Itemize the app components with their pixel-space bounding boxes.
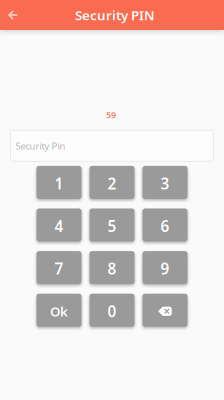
button[interactable]: 1 xyxy=(36,166,81,199)
button[interactable]: Back xyxy=(0,0,26,30)
staticText: 4 xyxy=(54,216,63,236)
staticText: 2 xyxy=(107,173,116,194)
staticText: 0 xyxy=(107,301,116,322)
staticText: Ok xyxy=(50,302,68,320)
button[interactable]: 9 xyxy=(142,251,187,284)
staticText: 5 xyxy=(107,216,116,236)
staticText: 9 xyxy=(160,258,169,279)
staticText: 7 xyxy=(54,258,63,279)
staticText: Security Pin xyxy=(15,139,65,152)
button[interactable]: Ok xyxy=(36,294,81,327)
staticText: 3 xyxy=(160,173,169,194)
staticText: 8 xyxy=(107,258,116,279)
staticText: 59 xyxy=(106,108,116,121)
button[interactable]: 7 xyxy=(36,251,81,284)
staticText: 1 xyxy=(54,173,63,194)
button[interactable]: Delete xyxy=(142,294,187,327)
button[interactable]: 8 xyxy=(89,251,134,284)
button[interactable]: 6 xyxy=(142,208,187,241)
button[interactable]: 2 xyxy=(89,166,134,199)
button[interactable]: 0 xyxy=(89,294,134,327)
staticText: Security PIN xyxy=(75,6,155,24)
button[interactable]: 5 xyxy=(89,208,134,241)
staticText: 6 xyxy=(160,216,169,236)
button[interactable]: 4 xyxy=(36,208,81,241)
button[interactable]: 3 xyxy=(142,166,187,199)
